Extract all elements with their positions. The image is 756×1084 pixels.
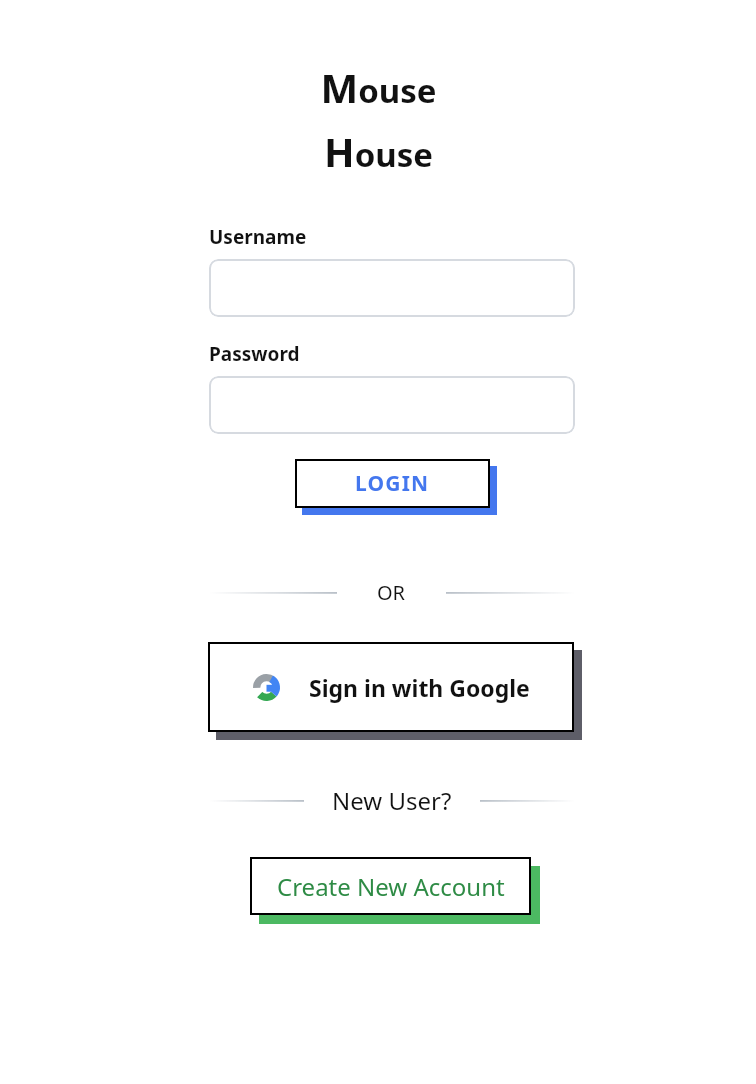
staticText: Create New Account — [277, 870, 505, 903]
staticText: OR — [377, 579, 406, 606]
staticText: LOGIN — [355, 469, 430, 498]
staticText: New User? — [332, 784, 452, 817]
staticText: Username — [209, 224, 307, 250]
other: Google logo — [253, 674, 280, 701]
staticText: Mouse — [320, 60, 437, 114]
button[interactable] — [209, 259, 575, 317]
button[interactable]: Create New Account — [250, 857, 531, 915]
staticText: House — [324, 124, 433, 178]
button[interactable]: Google logo — [208, 642, 574, 732]
staticText: Password — [209, 341, 300, 367]
button[interactable]: LOGIN — [295, 459, 490, 508]
staticText: Sign in with Google — [309, 672, 530, 703]
button[interactable] — [209, 376, 575, 434]
